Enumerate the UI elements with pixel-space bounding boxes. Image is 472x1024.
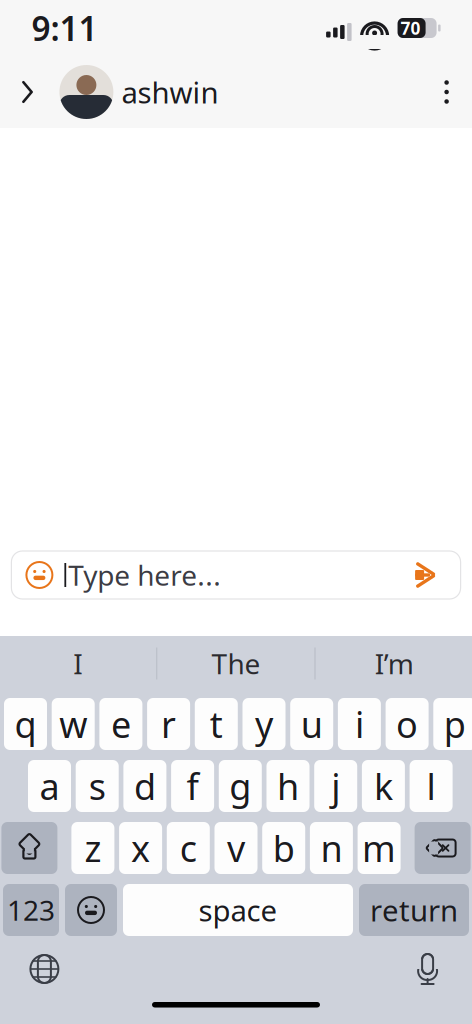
staticText: x (131, 824, 150, 872)
button[interactable]: w (52, 698, 95, 750)
button[interactable]: q (4, 698, 47, 750)
staticText: k (374, 762, 393, 810)
staticText: s (89, 762, 106, 810)
staticText: 123 (7, 891, 55, 929)
button[interactable]: Dictation (401, 942, 455, 996)
staticText: c (180, 824, 197, 872)
button[interactable]: space (123, 884, 353, 936)
staticText: w (59, 700, 87, 748)
staticText: q (14, 700, 36, 748)
staticText: v (227, 824, 245, 872)
button[interactable]: y (242, 698, 285, 750)
button[interactable]: I’m (316, 636, 472, 691)
button[interactable]: t (195, 698, 238, 750)
button[interactable]: z (71, 822, 114, 874)
button[interactable]: v (214, 822, 257, 874)
staticText: return (370, 890, 458, 929)
button[interactable]: x (119, 822, 162, 874)
button[interactable]: a (28, 760, 71, 812)
button[interactable]: More options (427, 65, 467, 119)
button[interactable]: Delete (415, 822, 471, 874)
button[interactable]: b (262, 822, 305, 874)
staticText: Type here... (68, 556, 221, 594)
button[interactable]: k (362, 760, 405, 812)
staticText: u (301, 700, 323, 748)
button[interactable]: h (266, 760, 309, 812)
button[interactable]: Back (5, 65, 49, 119)
staticText: b (273, 824, 295, 872)
button[interactable]: c (167, 822, 210, 874)
button[interactable]: s (76, 760, 119, 812)
staticText: o (396, 700, 418, 748)
staticText: z (84, 824, 101, 872)
button[interactable]: u (290, 698, 333, 750)
button[interactable]: return (359, 884, 469, 936)
staticText: d (134, 762, 156, 810)
staticText: The (211, 645, 260, 682)
staticText: y (255, 700, 273, 748)
button[interactable]: e (99, 698, 142, 750)
staticText: j (331, 762, 340, 810)
staticText: n (320, 824, 342, 872)
button[interactable]: j (314, 760, 357, 812)
staticText: e (111, 700, 131, 748)
staticText: I (73, 645, 82, 682)
button[interactable]: o (386, 698, 429, 750)
staticText: p (444, 700, 466, 748)
button[interactable]: f (171, 760, 214, 812)
button[interactable]: d (123, 760, 166, 812)
staticText: a (39, 762, 59, 810)
button[interactable]: The (157, 636, 314, 691)
button[interactable]: i (338, 698, 381, 750)
button[interactable]: Send (396, 552, 458, 598)
button[interactable]: g (219, 760, 262, 812)
staticText: I’m (375, 645, 414, 682)
button[interactable]: Shift (1, 822, 57, 874)
staticText: h (277, 762, 299, 810)
button[interactable]: ashwin (59, 65, 218, 119)
staticText: ashwin (121, 72, 218, 111)
staticText: i (355, 700, 364, 748)
button[interactable]: Next keyboard (17, 942, 71, 996)
button[interactable]: r (147, 698, 190, 750)
button[interactable]: l (410, 760, 453, 812)
staticText: 70 (401, 16, 421, 39)
staticText: l (427, 762, 436, 810)
button[interactable]: n (310, 822, 353, 874)
button[interactable]: Emoji (14, 552, 64, 598)
staticText: t (210, 700, 223, 748)
button[interactable]: p (433, 698, 472, 750)
button[interactable]: m (358, 822, 401, 874)
staticText: g (229, 762, 251, 810)
button[interactable]: 123 (3, 884, 59, 936)
staticText: m (362, 824, 396, 872)
staticText: space (198, 890, 277, 929)
button[interactable]: Emoji keyboard (65, 884, 117, 936)
staticText: 9:11 (31, 6, 97, 50)
staticText: r (161, 700, 176, 748)
staticText: f (187, 762, 199, 810)
button[interactable]: I (0, 636, 156, 691)
